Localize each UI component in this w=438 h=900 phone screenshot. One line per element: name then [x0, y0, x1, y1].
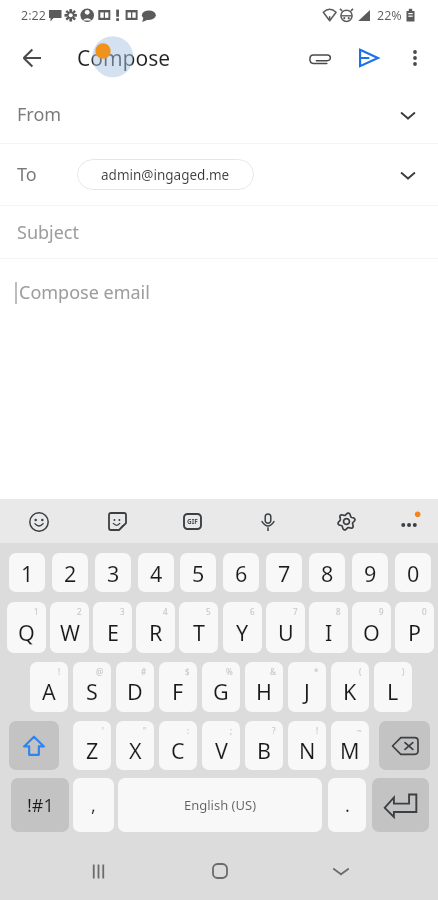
button[interactable]: ,	[73, 778, 114, 832]
staticText: B	[257, 736, 271, 765]
button[interactable]: B	[245, 721, 283, 770]
staticText: ~	[357, 725, 362, 736]
button[interactable]: U	[266, 602, 305, 653]
button[interactable]: 3	[95, 553, 131, 592]
button[interactable]: Attach file	[296, 34, 344, 82]
button[interactable]: O	[352, 602, 391, 653]
button[interactable]: Y	[223, 602, 262, 653]
staticText: 2:22	[21, 7, 46, 24]
button[interactable]: P	[395, 602, 434, 653]
button[interactable]: .	[328, 778, 366, 832]
button[interactable]: S	[73, 662, 111, 712]
staticText: From	[17, 102, 62, 127]
staticText: Compose email	[19, 280, 150, 305]
staticText: 9	[364, 559, 377, 588]
button[interactable]: Expand from	[388, 95, 428, 135]
button[interactable]: A	[30, 662, 68, 712]
staticText: $	[185, 666, 190, 677]
staticText: 8	[321, 559, 334, 588]
staticText: .	[345, 793, 350, 818]
staticText: R	[149, 618, 163, 647]
button[interactable]: Hide keyboard	[280, 848, 401, 894]
staticText: 6	[250, 606, 255, 617]
button[interactable]: 1	[9, 553, 45, 592]
button[interactable]: Expand recipients	[388, 155, 428, 195]
button[interactable]: H	[245, 662, 283, 712]
button[interactable]: R	[136, 602, 175, 653]
button[interactable]: C	[159, 721, 197, 770]
button[interactable]: K	[331, 662, 369, 712]
button[interactable]: Shift	[9, 721, 59, 770]
staticText: S	[86, 677, 98, 706]
button[interactable]: Recents	[37, 848, 159, 894]
button[interactable]: E	[93, 602, 132, 653]
staticText: 6	[235, 559, 248, 588]
staticText: '	[102, 725, 104, 736]
button[interactable]: N	[288, 721, 326, 770]
button[interactable]: Q	[7, 602, 46, 653]
staticText: ,	[91, 793, 96, 818]
staticText: Z	[86, 736, 99, 765]
staticText: Y	[236, 618, 249, 647]
button[interactable]: F	[159, 662, 197, 712]
button[interactable]: admin@ingaged.me	[77, 159, 254, 190]
button[interactable]: M	[331, 721, 369, 770]
button[interactable]: J	[288, 662, 326, 712]
staticText: 9	[379, 606, 384, 617]
button[interactable]: Back	[8, 34, 56, 82]
button[interactable]: Keyboard settings	[329, 504, 364, 539]
button[interactable]: !#1	[11, 778, 69, 832]
staticText: M	[340, 736, 360, 765]
staticText: &	[270, 666, 276, 677]
button[interactable]: Home	[159, 848, 280, 894]
button[interactable]: Backspace	[379, 721, 430, 770]
button[interactable]: I	[309, 602, 348, 653]
button[interactable]: Compose email	[0, 259, 438, 331]
staticText: E	[107, 618, 119, 647]
button[interactable]: English (US)	[118, 778, 322, 832]
staticText: !	[58, 666, 61, 677]
button[interactable]: 6	[223, 553, 259, 592]
staticText: Q	[18, 618, 35, 647]
staticText: O	[363, 618, 380, 647]
staticText: U	[278, 618, 294, 647]
button[interactable]: G	[202, 662, 240, 712]
button[interactable]: 2	[52, 553, 88, 592]
staticText: W	[60, 618, 80, 647]
button[interactable]: 9	[352, 553, 388, 592]
staticText: 0	[407, 559, 420, 588]
button[interactable]: W	[50, 602, 89, 653]
button[interactable]: D	[116, 662, 154, 712]
staticText: )	[402, 666, 405, 677]
button[interactable]: Stickers	[100, 504, 135, 539]
button[interactable]: Enter	[372, 778, 429, 832]
button[interactable]: Voice input	[250, 504, 285, 539]
button[interactable]: Subject	[0, 206, 438, 258]
button[interactable]: 5	[180, 553, 216, 592]
button[interactable]: Emoji	[21, 504, 56, 539]
staticText: D	[127, 677, 143, 706]
staticText: J	[304, 677, 310, 706]
button[interactable]: More options	[392, 35, 438, 81]
button[interactable]: GIF	[175, 504, 210, 539]
staticText: F	[172, 677, 184, 706]
staticText: To	[17, 162, 37, 187]
button[interactable]: X	[116, 721, 154, 770]
staticText: H	[256, 677, 272, 706]
button[interactable]: More options	[392, 504, 427, 539]
staticText: 4	[163, 606, 168, 617]
staticText: 8	[336, 606, 341, 617]
staticText: #	[141, 666, 147, 677]
staticText: 1	[21, 559, 34, 588]
button[interactable]: 4	[138, 553, 174, 592]
button[interactable]: Send	[344, 34, 392, 82]
button[interactable]: Z	[73, 721, 111, 770]
button[interactable]: 8	[309, 553, 345, 592]
button[interactable]: T	[179, 602, 218, 653]
button[interactable]: 7	[266, 553, 302, 592]
staticText: %	[226, 666, 233, 677]
button[interactable]: L	[374, 662, 412, 712]
button[interactable]: V	[202, 721, 240, 770]
button[interactable]: 0	[395, 553, 431, 592]
staticText: 2	[64, 559, 77, 588]
